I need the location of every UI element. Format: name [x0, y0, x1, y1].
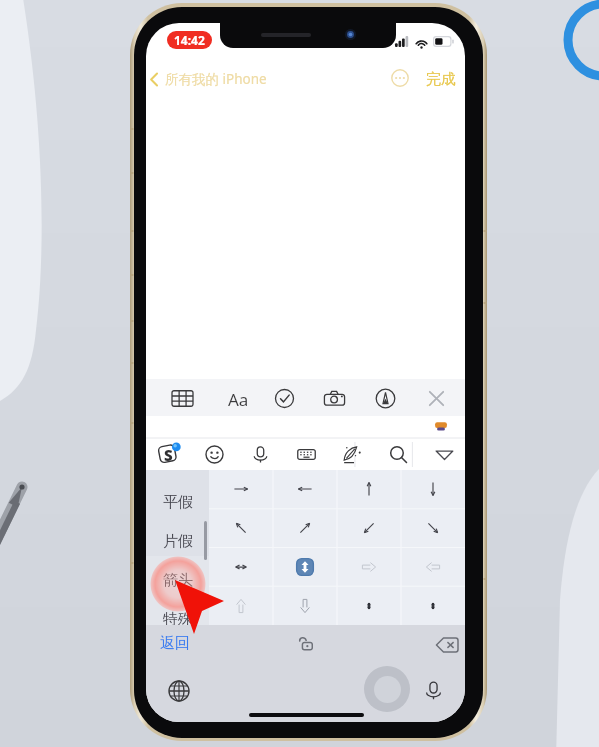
staticText: 特殊	[163, 610, 193, 629]
button[interactable]: Lock keyboard	[297, 634, 316, 653]
button[interactable]: Keyboard	[291, 439, 321, 469]
button[interactable]: Handwriting	[337, 439, 367, 469]
button[interactable]: Checklist	[269, 383, 299, 413]
button[interactable]: Arrow symbol	[337, 586, 401, 625]
button[interactable]: Emoji	[199, 439, 229, 469]
staticText: 箭头	[163, 571, 193, 590]
staticText: 返回	[160, 634, 190, 653]
staticText: 完成	[426, 70, 456, 89]
button[interactable]: Arrow symbol	[337, 508, 401, 547]
button[interactable]: Arrow symbol	[401, 508, 465, 547]
button[interactable]: Arrow symbol	[337, 547, 401, 586]
button[interactable]: Delete	[434, 632, 460, 658]
button[interactable]: Collapse	[429, 439, 459, 469]
button[interactable]: Arrow symbol	[401, 586, 465, 625]
button[interactable]: 所有我的 iPhone	[146, 66, 273, 92]
button[interactable]: Markup	[370, 383, 400, 413]
staticText: Aa	[228, 388, 249, 411]
button[interactable]: Change language	[165, 677, 193, 705]
button[interactable]: Arrow symbol	[209, 470, 273, 508]
button[interactable]: Table	[167, 383, 197, 413]
staticText: 片假	[163, 532, 193, 551]
staticText: S	[164, 445, 173, 465]
button[interactable]: 完成	[421, 65, 461, 94]
button[interactable]: Arrow symbol	[209, 547, 273, 586]
button[interactable]: 箭头	[146, 562, 209, 598]
staticText: 14:42	[174, 32, 205, 48]
button[interactable]: Microphone	[419, 676, 447, 704]
button[interactable]: Arrow symbol	[209, 586, 273, 625]
button[interactable]: 片假	[146, 523, 209, 559]
button[interactable]: Voice input	[245, 439, 275, 469]
button[interactable]: Arrow symbol	[273, 470, 337, 508]
button[interactable]: Arrow symbol	[337, 470, 401, 508]
staticText: 平假	[163, 493, 193, 512]
button[interactable]: Sogou	[152, 438, 184, 470]
button[interactable]: Dictation	[364, 666, 410, 712]
button[interactable]: Camera	[319, 383, 349, 413]
button[interactable]: Close	[421, 383, 451, 413]
button[interactable]: Arrow symbol	[273, 586, 337, 625]
button[interactable]: Arrow symbol	[401, 470, 465, 508]
button[interactable]: Arrow symbol	[273, 547, 337, 586]
button[interactable]: Text format	[218, 383, 248, 413]
button[interactable]: Arrow symbol	[209, 508, 273, 547]
button[interactable]: 返回	[157, 630, 193, 657]
button[interactable]: 平假	[146, 484, 209, 520]
button[interactable]: Arrow symbol	[401, 547, 465, 586]
staticText: 所有我的 iPhone	[165, 70, 267, 88]
button[interactable]: More options	[389, 67, 411, 89]
button[interactable]: Arrow symbol	[273, 508, 337, 547]
button[interactable]: 特殊	[146, 601, 209, 637]
button[interactable]: Search	[383, 439, 413, 469]
